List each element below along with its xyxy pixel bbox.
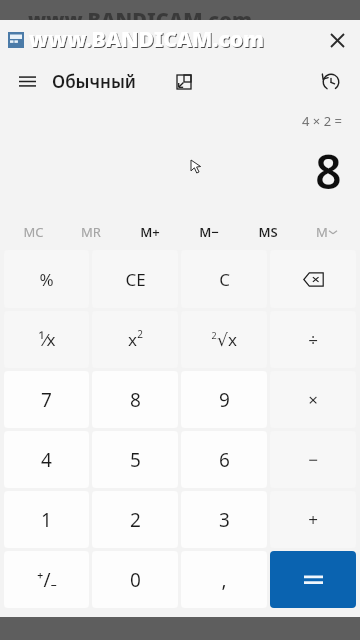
button[interactable]: % [4, 250, 89, 308]
button[interactable]: 6 [181, 431, 267, 488]
staticText: 7 [41, 387, 52, 413]
button[interactable]: 0 [92, 551, 178, 608]
button[interactable]: ÷ [270, 311, 356, 368]
staticText: www.BANDICAM.com [28, 6, 252, 20]
staticText: 4 [41, 447, 52, 473]
button[interactable]: M− [179, 214, 238, 250]
staticText: M [316, 223, 328, 241]
button[interactable]: MR [62, 214, 120, 250]
button[interactable]: 5 [92, 431, 178, 488]
staticText: √x [217, 328, 237, 351]
staticText: − [308, 448, 318, 471]
staticText: CE [125, 268, 146, 291]
staticText: , [221, 567, 227, 593]
button[interactable]: 1 [4, 491, 89, 548]
button[interactable]: History [314, 65, 348, 99]
button[interactable]: , [181, 551, 267, 608]
staticText: MC [23, 223, 44, 241]
staticText: 2 [130, 507, 141, 533]
button[interactable]: M+ [120, 214, 179, 250]
staticText: Обычный [52, 70, 136, 93]
button[interactable]: ⁺/₋ [4, 551, 89, 608]
button[interactable]: 2 [92, 491, 178, 548]
staticText: % [39, 268, 54, 291]
staticText: MS [258, 223, 278, 241]
button[interactable]: × [270, 371, 356, 428]
staticText: ⁺/₋ [37, 567, 57, 593]
staticText: 9 [219, 387, 230, 413]
staticText: 2 [211, 329, 217, 341]
button[interactable]: Navigation menu [8, 62, 46, 100]
button[interactable]: CE [92, 250, 178, 308]
staticText: M+ [140, 223, 160, 241]
staticText: + [308, 508, 318, 531]
staticText: M− [199, 223, 219, 241]
button[interactable]: Squared [92, 311, 178, 368]
staticText: C [219, 268, 230, 291]
button[interactable]: Square root [181, 311, 267, 368]
button[interactable]: + [270, 491, 356, 548]
staticText: ¹⁄x [38, 328, 56, 351]
staticText: MR [81, 223, 101, 241]
button[interactable]: MC [4, 214, 62, 250]
staticText: www.BANDICAM.com [29, 25, 265, 54]
staticText: 8 [315, 140, 342, 203]
button[interactable]: Backspace [270, 250, 356, 308]
staticText: 2 [137, 327, 143, 341]
button[interactable]: 3 [181, 491, 267, 548]
button[interactable]: Equals [270, 551, 356, 608]
staticText: ÷ [308, 328, 318, 351]
staticText: www.BANDICAM.com [30, 26, 266, 55]
button[interactable]: 9 [181, 371, 267, 428]
staticText: × [308, 388, 318, 411]
button[interactable]: Close [326, 29, 348, 51]
button[interactable]: 8 [92, 371, 178, 428]
button[interactable]: − [270, 431, 356, 488]
button[interactable]: Memory list [297, 214, 356, 250]
button[interactable]: 4 [4, 431, 89, 488]
staticText: 4 × 2 = [302, 112, 342, 130]
button[interactable]: Keep on top [172, 70, 196, 94]
staticText: 6 [219, 447, 230, 473]
staticText: 3 [219, 507, 230, 533]
staticText: 1 [41, 507, 52, 533]
staticText: 8 [130, 387, 141, 413]
button[interactable]: C [181, 250, 267, 308]
staticText: 5 [130, 447, 141, 473]
button[interactable]: Reciprocal [4, 311, 89, 368]
staticText: x [128, 328, 137, 351]
button[interactable]: MS [238, 214, 297, 250]
button[interactable]: 7 [4, 371, 89, 428]
staticText: 0 [130, 567, 141, 593]
